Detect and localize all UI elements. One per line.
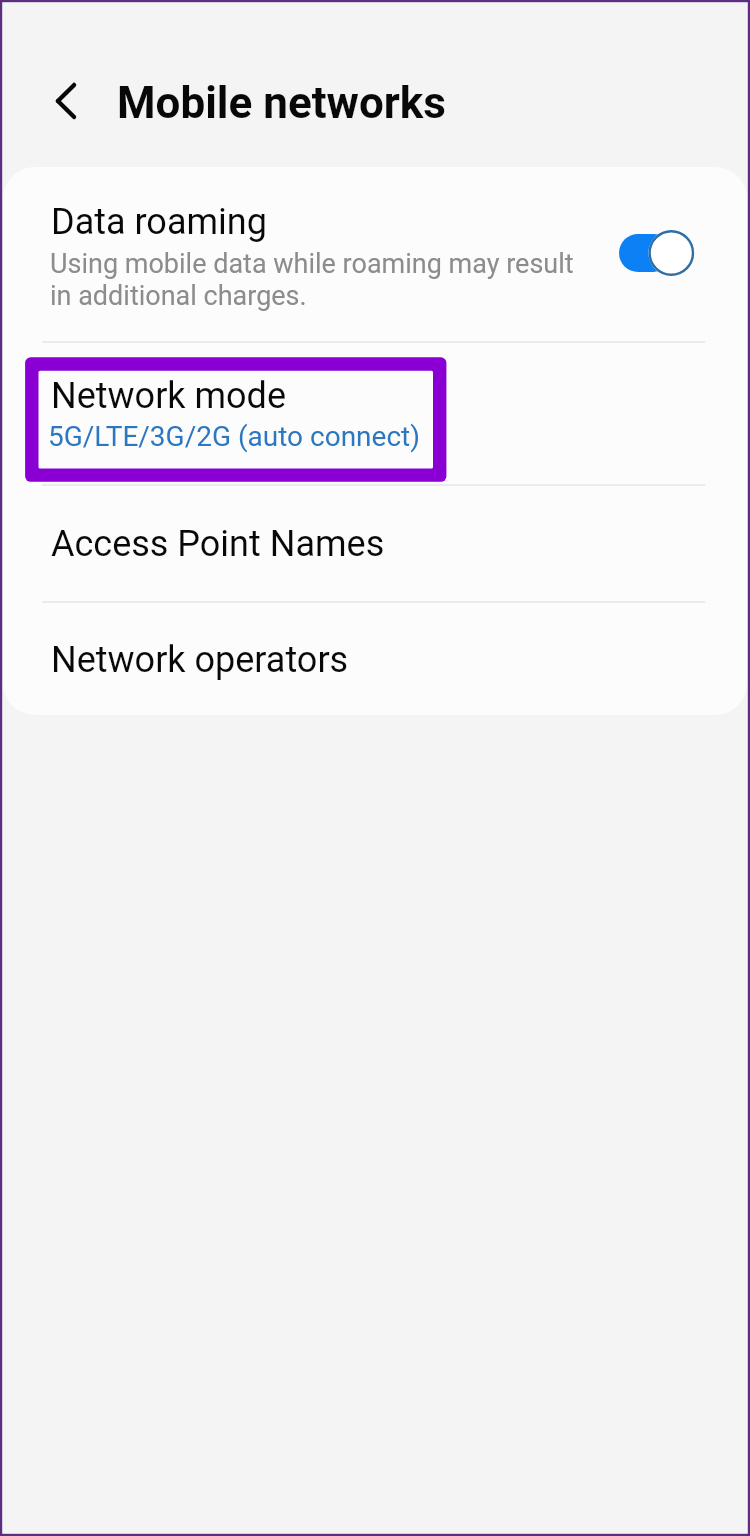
staticText: Network operators — [51, 639, 349, 681]
button[interactable]: Back — [35, 69, 99, 133]
staticText: Access Point Names — [51, 523, 385, 565]
button[interactable]: Network mode — [3, 343, 747, 484]
button[interactable]: Network operators — [3, 603, 747, 715]
button[interactable]: Data roaming — [3, 167, 747, 341]
staticText: Using mobile data while roaming may resu… — [50, 248, 595, 312]
staticText: 5G/LTE/3G/2G (auto connect) — [48, 420, 420, 453]
button[interactable]: Access Point Names — [3, 486, 747, 601]
staticText: Network mode — [51, 375, 287, 417]
staticText: Data roaming — [51, 201, 267, 243]
button[interactable]: Data roaming switch, on — [601, 212, 717, 294]
staticText: Mobile networks — [117, 77, 446, 129]
